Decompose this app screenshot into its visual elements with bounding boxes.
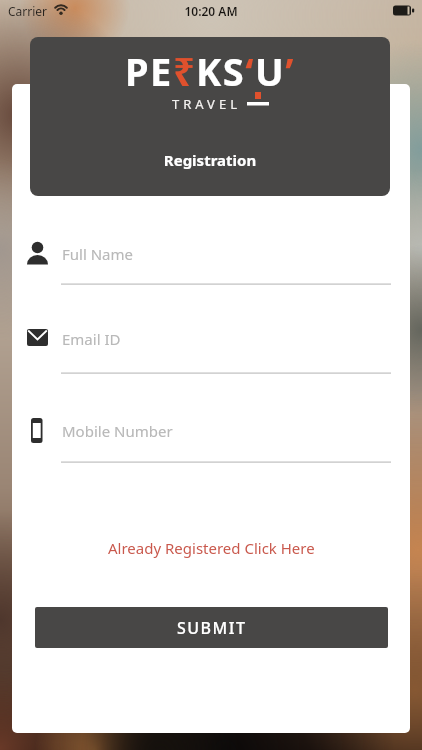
- staticText: Already Registered Click Here: [108, 538, 315, 558]
- staticText: Email ID: [62, 329, 121, 349]
- staticText: 10:20 AM: [0, 3, 422, 19]
- staticText: Mobile Number: [62, 421, 173, 441]
- button[interactable]: Full Name: [27, 234, 391, 286]
- button[interactable]: Already Registered Click Here: [106, 536, 316, 560]
- staticText: Registration: [30, 150, 390, 170]
- staticText: Carrier: [8, 3, 48, 19]
- staticText: PE₹KS‘U’: [125, 45, 296, 97]
- staticText: TRAVEL: [172, 95, 241, 113]
- button[interactable]: SUBMIT: [35, 607, 388, 648]
- button[interactable]: Mobile Number: [27, 412, 391, 464]
- button[interactable]: Email ID: [27, 323, 391, 375]
- staticText: Full Name: [62, 244, 133, 264]
- staticText: SUBMIT: [177, 617, 247, 639]
